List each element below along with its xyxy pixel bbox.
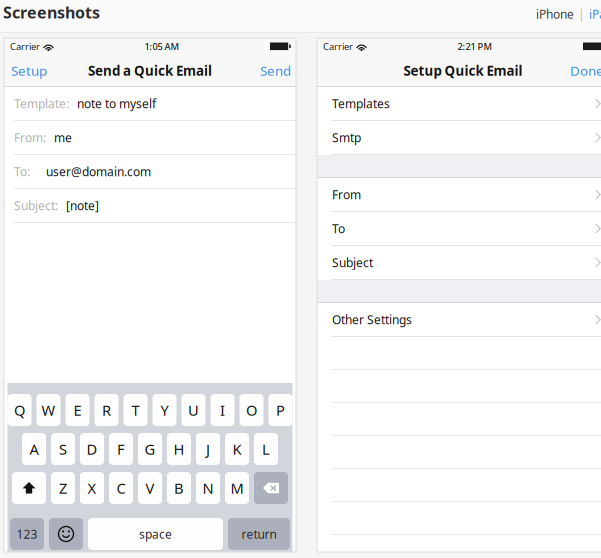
button[interactable]: V bbox=[138, 472, 162, 504]
button[interactable]: Z bbox=[51, 472, 75, 504]
staticText: J bbox=[206, 439, 210, 459]
staticText: iPhone bbox=[536, 6, 574, 22]
staticText: note to myself bbox=[77, 95, 156, 111]
staticText: M bbox=[230, 478, 243, 498]
staticText: 1:05 AM bbox=[144, 40, 179, 53]
button[interactable]: X bbox=[80, 472, 104, 504]
staticText: To: bbox=[14, 163, 30, 179]
staticText: Send bbox=[260, 62, 291, 79]
button[interactable]: Y bbox=[152, 394, 176, 426]
staticText: Done bbox=[570, 62, 601, 79]
staticText: D bbox=[86, 439, 97, 459]
staticText: Template: bbox=[14, 95, 69, 111]
staticText: U bbox=[188, 400, 199, 420]
staticText: R bbox=[102, 400, 111, 420]
button[interactable]: T bbox=[123, 394, 147, 426]
button[interactable]: Emoji bbox=[49, 518, 83, 550]
staticText: B bbox=[174, 478, 184, 498]
staticText: iPad bbox=[589, 6, 601, 22]
staticText: W bbox=[41, 400, 55, 420]
button[interactable]: F bbox=[109, 433, 133, 465]
staticText: Carrier bbox=[323, 40, 353, 53]
staticText: Setup bbox=[11, 62, 47, 79]
staticText: T bbox=[131, 400, 139, 420]
button[interactable]: H bbox=[167, 433, 191, 465]
staticText: A bbox=[29, 439, 38, 459]
button[interactable]: Other Settings bbox=[317, 303, 601, 336]
staticText: Templates bbox=[332, 95, 390, 111]
button[interactable]: Shift bbox=[12, 472, 46, 504]
staticText: To bbox=[332, 220, 345, 236]
staticText: Other Settings bbox=[332, 311, 412, 327]
button[interactable]: Delete bbox=[254, 472, 288, 504]
staticText: L bbox=[262, 439, 270, 459]
staticText: E bbox=[73, 400, 81, 420]
button[interactable]: return bbox=[228, 518, 290, 550]
staticText: [note] bbox=[66, 197, 99, 213]
button[interactable]: A bbox=[22, 433, 46, 465]
button[interactable]: To bbox=[317, 212, 601, 245]
staticText: From: bbox=[14, 129, 46, 145]
button[interactable]: Done bbox=[567, 57, 601, 84]
button[interactable]: U bbox=[181, 394, 205, 426]
staticText: | bbox=[578, 6, 585, 22]
staticText: N bbox=[202, 478, 213, 498]
button[interactable]: Templates bbox=[317, 87, 601, 120]
staticText: H bbox=[173, 439, 184, 459]
button[interactable]: G bbox=[138, 433, 162, 465]
staticText: space bbox=[139, 526, 172, 542]
button[interactable]: K bbox=[225, 433, 249, 465]
button[interactable]: Subject bbox=[317, 246, 601, 279]
staticText: Smtp bbox=[332, 129, 361, 145]
staticText: P bbox=[276, 400, 285, 420]
button[interactable]: space bbox=[88, 518, 223, 550]
staticText: return bbox=[241, 526, 276, 542]
button[interactable]: L bbox=[254, 433, 278, 465]
staticText: Send a Quick Email bbox=[88, 62, 212, 79]
button[interactable]: C bbox=[109, 472, 133, 504]
staticText: K bbox=[232, 439, 241, 459]
staticText: Setup Quick Email bbox=[403, 62, 522, 79]
staticText: O bbox=[246, 400, 257, 420]
staticText: F bbox=[117, 439, 125, 459]
staticText: Q bbox=[14, 400, 25, 420]
button[interactable]: 123 bbox=[10, 518, 44, 550]
button[interactable]: M bbox=[225, 472, 249, 504]
staticText: V bbox=[145, 478, 154, 498]
staticText: Carrier bbox=[10, 40, 40, 53]
staticText: From bbox=[332, 186, 361, 202]
staticText: Subject bbox=[332, 254, 373, 270]
staticText: I bbox=[220, 400, 225, 420]
button[interactable]: Q bbox=[7, 394, 31, 426]
button[interactable]: iPhone bbox=[536, 6, 574, 22]
staticText: Y bbox=[160, 400, 168, 420]
button[interactable]: N bbox=[196, 472, 220, 504]
button[interactable]: I bbox=[210, 394, 234, 426]
staticText: X bbox=[87, 478, 96, 498]
staticText: Z bbox=[59, 478, 67, 498]
button[interactable]: S bbox=[51, 433, 75, 465]
button[interactable]: Smtp bbox=[317, 121, 601, 154]
button[interactable]: iPad bbox=[589, 6, 601, 22]
button[interactable]: J bbox=[196, 433, 220, 465]
button[interactable]: Send bbox=[257, 57, 294, 84]
staticText: S bbox=[59, 439, 67, 459]
button[interactable]: D bbox=[80, 433, 104, 465]
staticText: 2:21 PM bbox=[457, 40, 492, 53]
button[interactable]: B bbox=[167, 472, 191, 504]
staticText: me bbox=[54, 129, 72, 145]
button[interactable]: O bbox=[239, 394, 263, 426]
staticText: G bbox=[144, 439, 155, 459]
staticText: user@domain.com bbox=[46, 163, 151, 179]
button[interactable]: W bbox=[36, 394, 60, 426]
button[interactable]: Setup bbox=[8, 57, 50, 84]
button[interactable]: R bbox=[94, 394, 118, 426]
staticText: 123 bbox=[16, 526, 37, 542]
staticText: C bbox=[116, 478, 125, 498]
button[interactable]: From bbox=[317, 178, 601, 211]
staticText: Screenshots bbox=[3, 2, 100, 23]
staticText: Subject: bbox=[14, 197, 58, 213]
button[interactable]: P bbox=[268, 394, 292, 426]
button[interactable]: E bbox=[65, 394, 89, 426]
